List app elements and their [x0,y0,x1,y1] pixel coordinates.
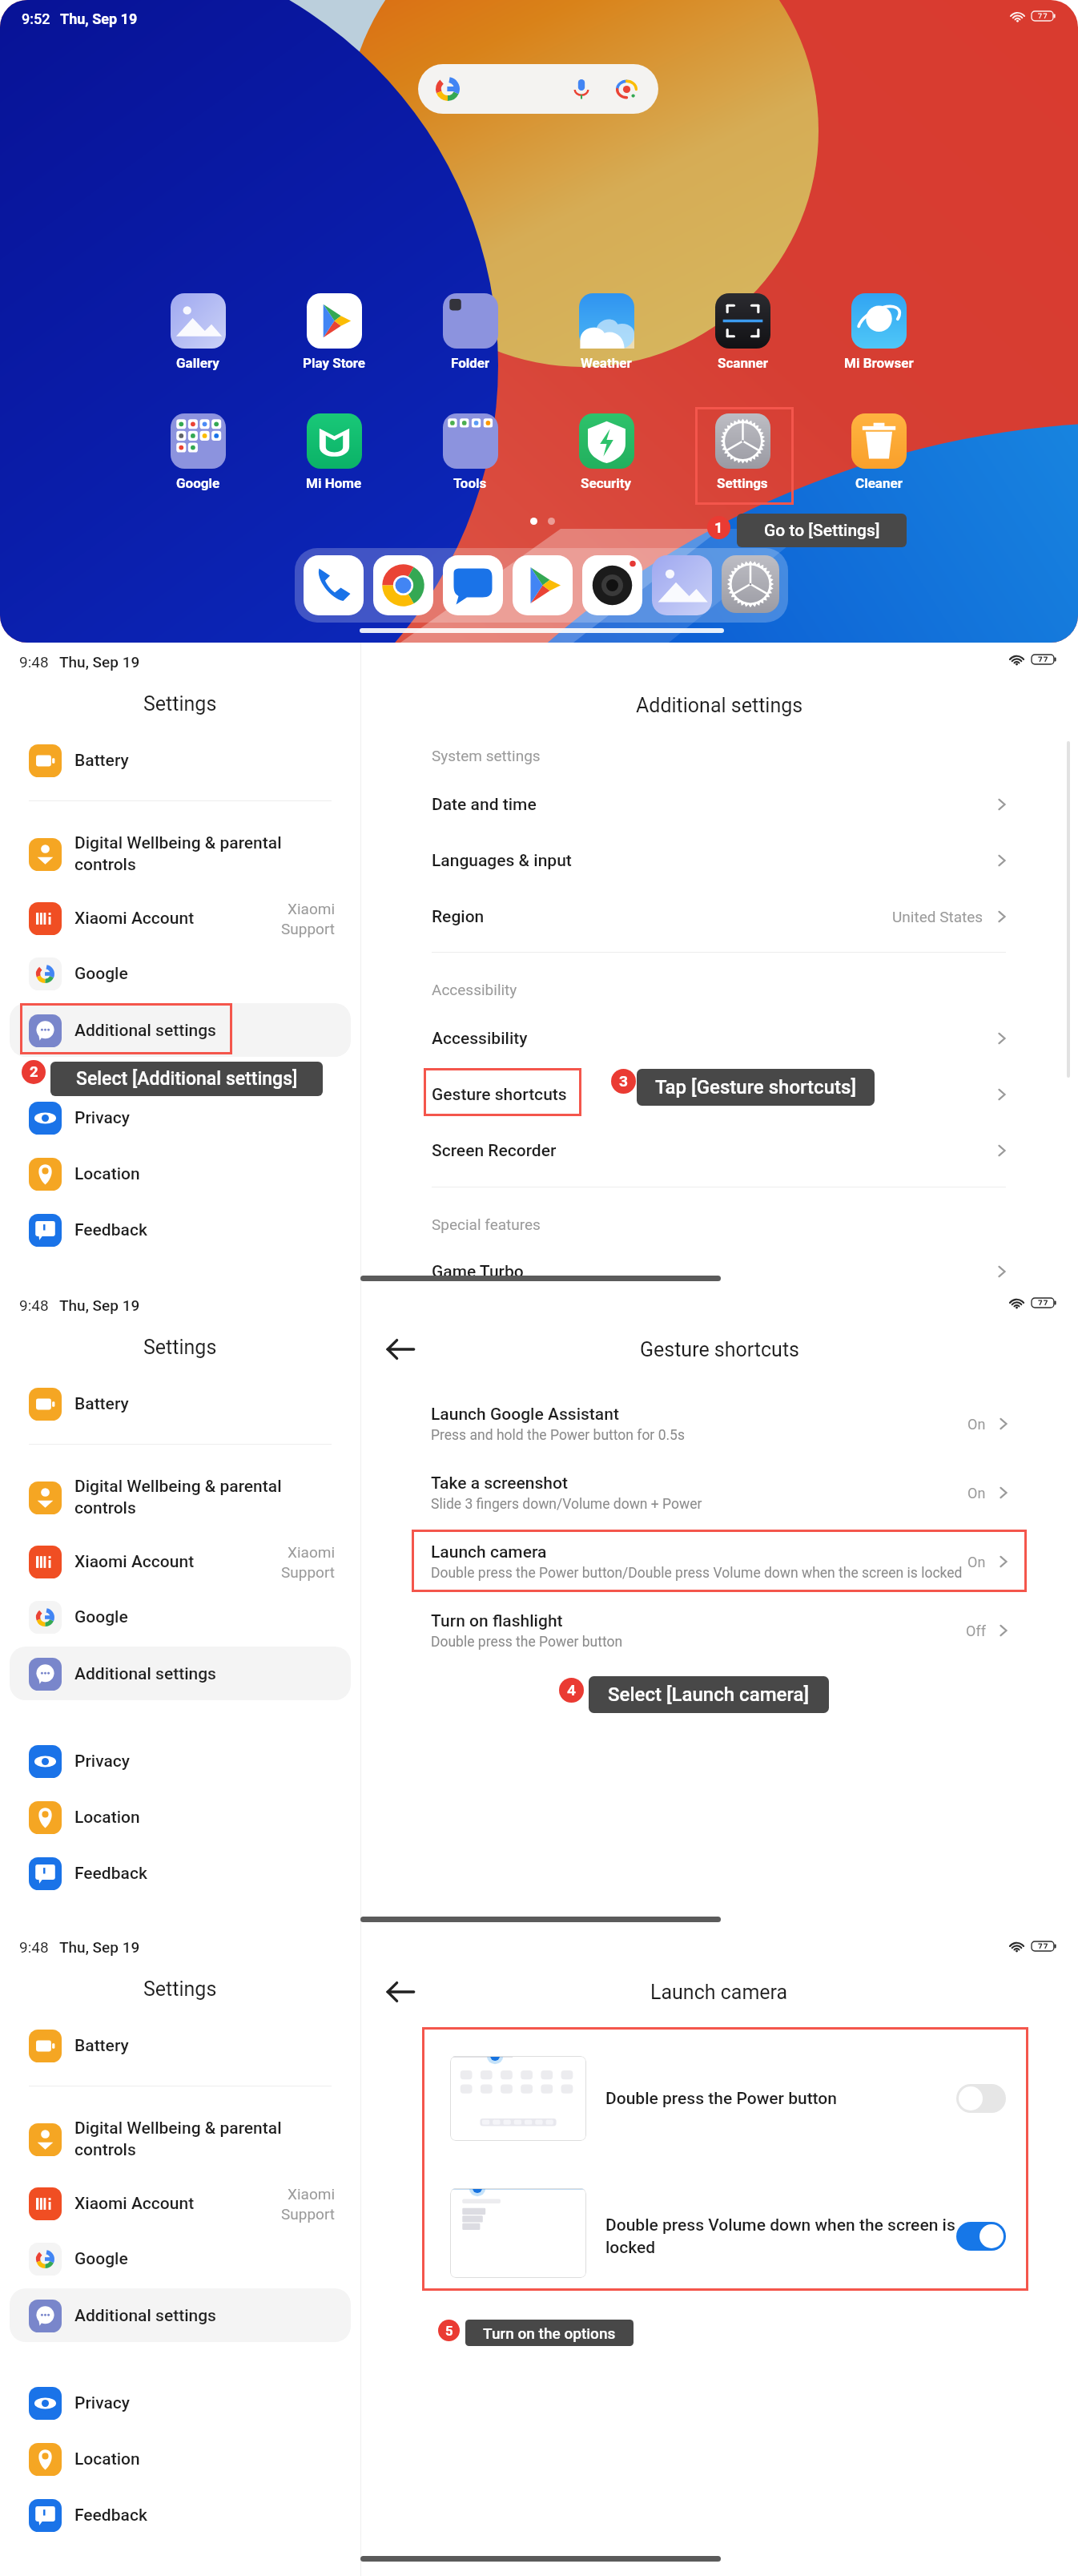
staticText: On [967,1416,986,1433]
button[interactable]: Toggle off [956,2084,1006,2113]
staticText: Accessibility [432,981,517,998]
button[interactable]: Feedback [0,1203,360,1257]
staticText: Settings [143,692,217,716]
button[interactable]: Messages [443,555,503,615]
button[interactable]: Launch Google Assistant [360,1395,1078,1453]
button[interactable]: Security [557,413,656,491]
button[interactable]: Toggle on [956,2222,1006,2251]
staticText: Digital Wellbeing & parental controls [74,833,291,875]
staticText: Xiaomi Support [247,2185,335,2223]
button[interactable]: Digital Wellbeing & parental controls [0,827,360,881]
button[interactable]: Accessibility [360,1015,1078,1062]
button[interactable]: Scanner [693,293,792,371]
staticText: Battery [74,1394,291,1414]
staticText: System settings [432,747,541,764]
staticText: Thu, Sep 19 [59,1296,140,1314]
button[interactable]: Xiaomi Account [0,1534,360,1589]
staticText: Gesture shortcuts [640,1338,799,1361]
button[interactable]: Additional settings [0,2288,360,2343]
button[interactable]: Play Store [284,293,384,371]
button[interactable]: Mi Browser [829,293,928,371]
button[interactable]: Date and time [360,781,1078,828]
button[interactable]: Xiaomi Account [0,2176,360,2231]
button[interactable]: Additional settings [0,1003,360,1058]
button[interactable]: Gesture shortcuts [360,1071,1078,1118]
staticText: Thu, Sep 19 [59,653,140,671]
staticText: 9:48 [19,1296,49,1314]
button[interactable]: Chrome [373,555,433,615]
button[interactable] [418,64,658,114]
button[interactable]: Turn on flashlight [360,1602,1078,1659]
button[interactable]: Cleaner [829,413,928,491]
button[interactable]: Battery [0,733,360,788]
staticText: 2 [30,1063,38,1081]
button[interactable]: Google [0,946,360,1001]
staticText: Thu, Sep 19 [59,1938,140,1956]
staticText: Game Turbo [432,1262,524,1282]
staticText: Launch camera [431,1542,547,1562]
button[interactable]: Weather [557,293,656,371]
button[interactable]: Region [360,893,1078,940]
staticText: Date and time [432,795,537,815]
staticText: Double press the Power button [605,2089,955,2109]
button[interactable]: Gallery [652,555,712,615]
button[interactable]: Launch camera [360,1533,1078,1590]
button[interactable]: Location [0,2432,360,2486]
button[interactable]: Back [383,1332,418,1367]
button[interactable]: Tools [420,413,520,491]
button[interactable]: Settings [693,413,792,491]
button[interactable]: Battery [0,2018,360,2073]
button[interactable]: Take a screenshot [360,1464,1078,1522]
button[interactable]: Feedback [0,2488,360,2542]
button[interactable]: Additional settings [0,1647,360,1701]
staticText: Location [74,2449,291,2469]
button[interactable]: Folder [420,293,520,371]
staticText: Screen Recorder [432,1141,557,1161]
button[interactable]: Play Store [513,555,573,615]
staticText: Tap [Gesture shortcuts] [655,1076,856,1099]
button[interactable]: Back [383,1974,418,2010]
button[interactable]: Languages & input [360,837,1078,884]
button[interactable]: Privacy [0,2376,360,2430]
button[interactable]: Privacy [0,1734,360,1788]
staticText: On [967,1485,986,1502]
button[interactable]: Digital Wellbeing & parental controls [0,1470,360,1525]
staticText: Mi Browser [844,355,914,371]
button[interactable]: Phone [304,555,364,615]
staticText: 9:48 [19,653,49,671]
staticText: 9:48 [19,1938,49,1956]
staticText: Digital Wellbeing & parental controls [74,1477,291,1518]
staticText: Select [Additional settings] [76,1068,298,1090]
button[interactable]: Feedback [0,1846,360,1901]
staticText: Privacy [74,1752,291,1772]
button[interactable]: Double press Volume down when the screen… [424,2191,1028,2281]
button[interactable]: Camera [582,555,642,615]
button[interactable]: Double press the Power button [424,2054,1028,2143]
staticText: Battery [74,2036,291,2056]
button[interactable]: Mi Home [284,413,384,491]
button[interactable]: Digital Wellbeing & parental controls [0,2112,360,2167]
staticText: Location [74,1808,291,1828]
staticText: Double press the Power button [431,1634,623,1651]
button[interactable]: Google [148,413,247,491]
button[interactable]: Settings [722,555,779,615]
button[interactable]: Google [0,2231,360,2286]
staticText: 4 [567,1681,577,1699]
button[interactable]: Xiaomi Account [0,891,360,945]
staticText: Tools [453,475,487,491]
button[interactable]: Screen Recorder [360,1127,1078,1174]
button[interactable]: Location [0,1790,360,1844]
staticText: Double press the Power button/Double pre… [431,1565,963,1582]
button[interactable]: Privacy [0,1090,360,1145]
button[interactable]: Game Turbo [360,1248,1078,1295]
button[interactable]: Location [0,1147,360,1201]
staticText: Feedback [74,2505,291,2526]
staticText: Special features [432,1215,541,1233]
staticText: Off [966,1623,986,1639]
button[interactable]: Gallery [148,293,247,371]
staticText: Launch Google Assistant [431,1405,619,1425]
button[interactable]: Google [0,1590,360,1644]
staticText: Privacy [74,1108,291,1128]
button[interactable]: Battery [0,1377,360,1431]
staticText: Gallery [176,355,219,371]
